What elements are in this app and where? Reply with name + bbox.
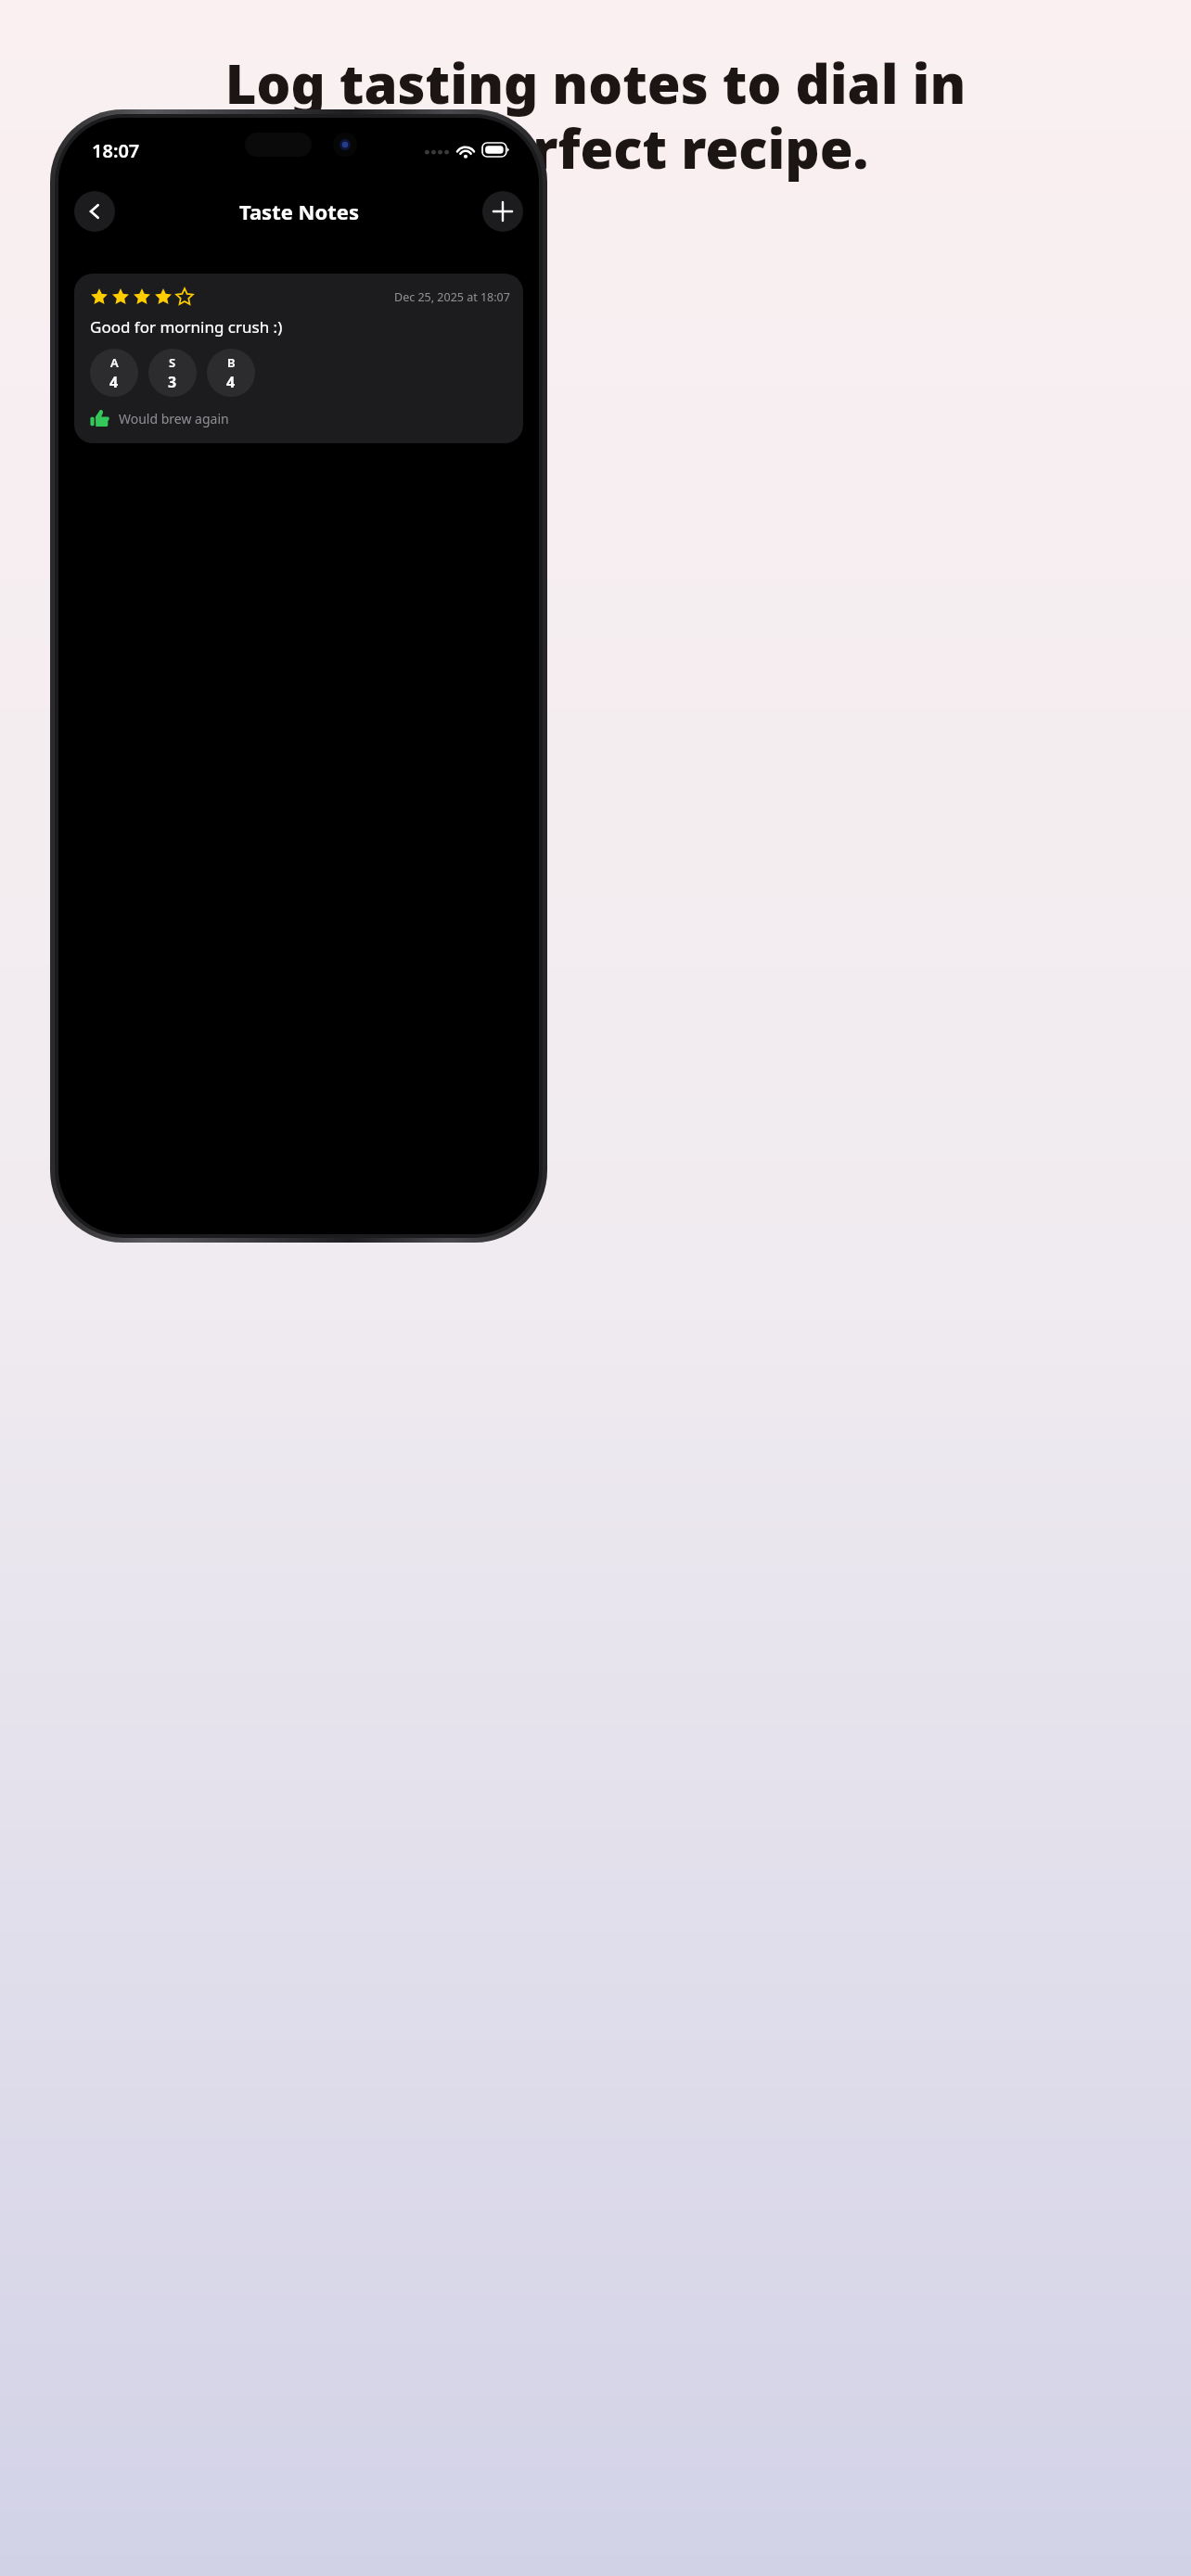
button[interactable]: A [90, 349, 138, 397]
staticText: Would brew again [119, 410, 229, 427]
staticText: S [169, 354, 176, 371]
staticText: Good for morning crush :) [90, 316, 283, 338]
staticText: 4 [109, 372, 119, 392]
staticText: 4 [226, 372, 236, 392]
staticText: 18:07 [92, 138, 140, 163]
staticText: A [110, 354, 119, 371]
button[interactable]: Back [74, 191, 115, 232]
button[interactable]: B [207, 349, 255, 397]
staticText: B [227, 354, 236, 371]
staticText: 3 [168, 372, 177, 392]
staticText: Log tasting notes to dial in your perfec… [22, 46, 1169, 185]
staticText: Taste Notes [239, 198, 359, 225]
button[interactable]: Add taste note [482, 191, 523, 232]
button[interactable]: S [148, 349, 197, 397]
button[interactable]: Dec 25, 2025 at 18:07 [74, 274, 523, 443]
staticText: Dec 25, 2025 at 18:07 [394, 289, 510, 305]
